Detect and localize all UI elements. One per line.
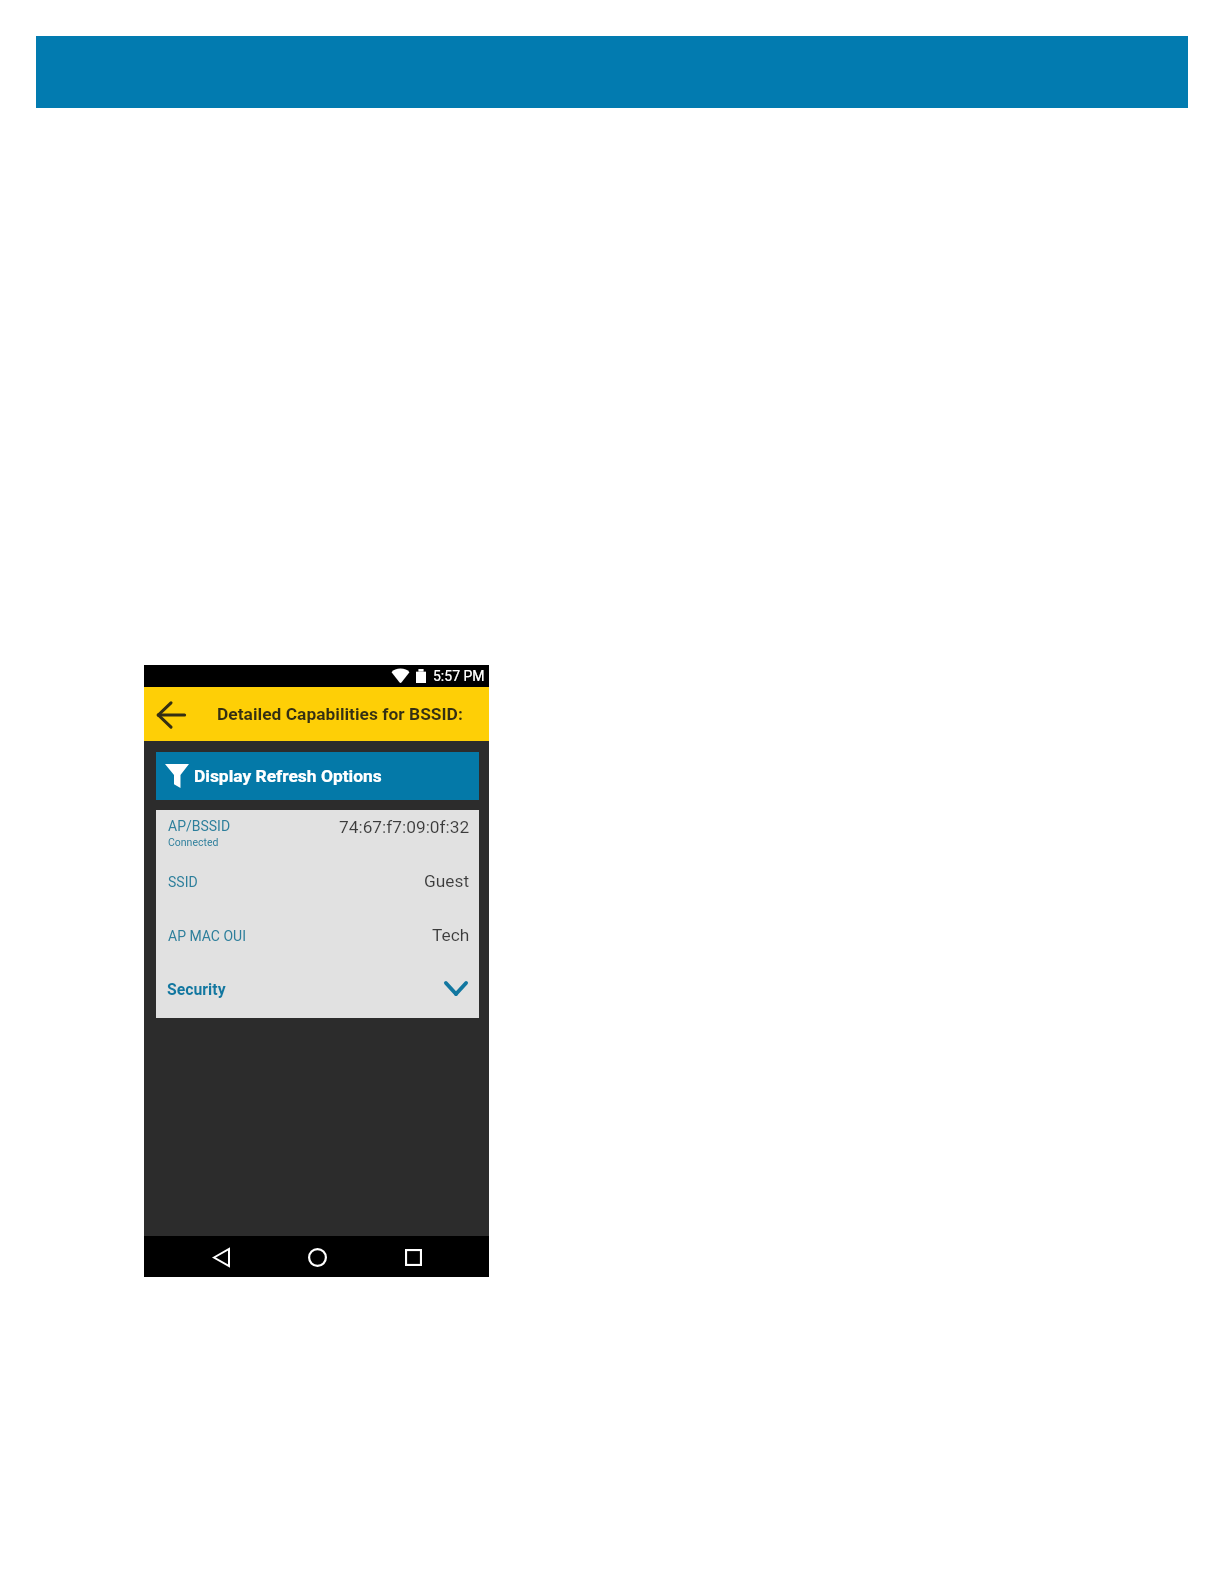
staticText: Security [167,980,226,999]
staticText: 74:67:f7:09:0f:32 [339,817,470,837]
button[interactable]: Back [201,1237,241,1277]
button[interactable]: Back [151,694,191,734]
staticText: SSID [168,874,198,890]
staticText: AP/BSSID [168,818,231,834]
button[interactable]: AP MAC OUI [156,912,479,966]
staticText: Tech [432,925,470,945]
button[interactable]: AP/BSSID [156,810,479,858]
staticText: Detailed Capabilities for BSSID: [217,704,463,724]
button[interactable]: Home [297,1237,337,1277]
button[interactable]: Security [156,966,479,1018]
staticText: 5:57 PM [433,668,485,684]
staticText: Connected [168,836,219,848]
button[interactable]: SSID [156,858,479,912]
button[interactable]: Recent apps [393,1237,433,1277]
staticText: Display Refresh Options [194,766,382,786]
button[interactable]: Display Refresh Options [156,752,479,800]
staticText: AP MAC OUI [168,928,246,944]
staticText: Guest [424,871,470,891]
